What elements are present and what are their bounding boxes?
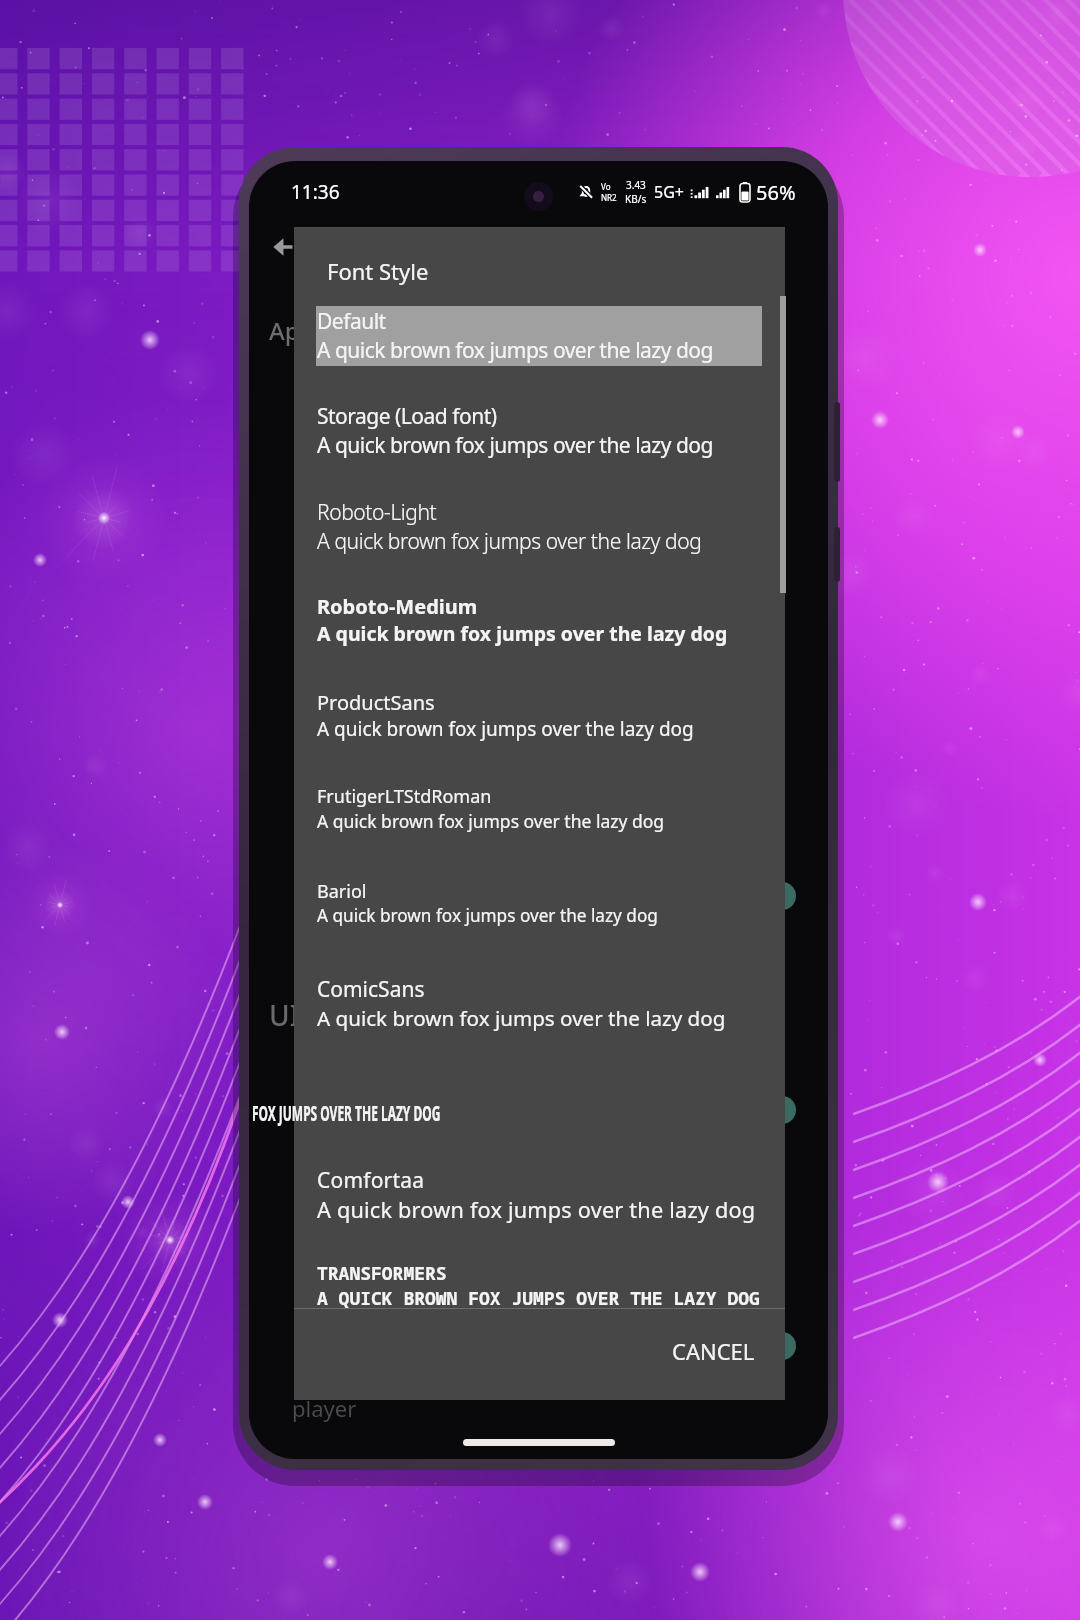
button[interactable]: Roboto-Light <box>316 497 762 557</box>
staticText: BEBASNEUE <box>249 1070 595 1099</box>
staticText: 5G+ <box>654 181 684 203</box>
staticText: KB/s <box>625 192 647 206</box>
staticText: A quick brown fox jumps over the lazy do… <box>317 904 658 927</box>
staticText: 11:36 <box>291 179 340 205</box>
staticText: CANCEL <box>672 1336 755 1366</box>
staticText: A QUICK BROWN FOX JUMPS OVER THE LAZY DO… <box>317 1286 760 1311</box>
staticText: UI <box>269 996 300 1034</box>
button[interactable]: ComicSans <box>316 974 762 1033</box>
button[interactable]: ProductSans <box>316 688 762 743</box>
button[interactable]: Comfortaa <box>316 1165 762 1226</box>
staticText: Appearance <box>269 314 406 347</box>
staticText: Bariol <box>317 879 367 904</box>
staticText: player <box>292 1393 357 1423</box>
staticText: 3.43 <box>626 178 646 192</box>
staticText: A quick brown fox jumps over the lazy do… <box>317 716 694 742</box>
button[interactable]: Default <box>316 306 762 366</box>
button[interactable]: FrutigerLTStdRoman <box>316 783 762 834</box>
button[interactable]: Bariol <box>316 878 762 928</box>
staticText: Roboto-Medium <box>317 593 478 620</box>
button[interactable]: Roboto-Medium <box>316 592 762 648</box>
staticText: NR2 <box>601 192 617 203</box>
staticText: A quick brown fox jumps over the lazy do… <box>317 527 702 556</box>
button[interactable]: Back <box>259 223 307 271</box>
staticText: 56% <box>756 179 796 206</box>
staticText: TRANSFORMERS <box>317 1261 447 1286</box>
staticText: A QUICK BROWN FOX JUMPS OVER THE LAZY DO… <box>249 1099 595 1128</box>
staticText: Comfortaa <box>317 1166 425 1195</box>
staticText: Vo <box>601 181 611 192</box>
staticText: FrutigerLTStdRoman <box>317 784 492 809</box>
staticText: Roboto-Light <box>317 498 437 527</box>
button[interactable]: CANCEL <box>658 1326 769 1376</box>
staticText: A quick brown fox jumps over the lazy do… <box>317 620 728 647</box>
staticText: A quick brown fox jumps over the lazy do… <box>317 1004 726 1032</box>
staticText: A quick brown fox jumps over the lazy do… <box>317 336 713 365</box>
staticText: ProductSans <box>317 689 435 716</box>
button[interactable]: TRANSFORMERS <box>316 1260 762 1312</box>
staticText: A quick brown fox jumps over the lazy do… <box>317 431 713 460</box>
staticText: Default <box>317 307 386 336</box>
staticText: Storage (Load font) <box>317 402 497 431</box>
staticText: A quick brown fox jumps over the lazy do… <box>317 1195 756 1225</box>
button[interactable]: BEBASNEUE <box>316 1069 762 1129</box>
staticText: A quick brown fox jumps over the lazy do… <box>317 809 665 833</box>
staticText: ComicSans <box>317 975 425 1004</box>
button[interactable]: Storage (Load font) <box>316 401 762 461</box>
staticText: Font Style <box>327 256 429 286</box>
